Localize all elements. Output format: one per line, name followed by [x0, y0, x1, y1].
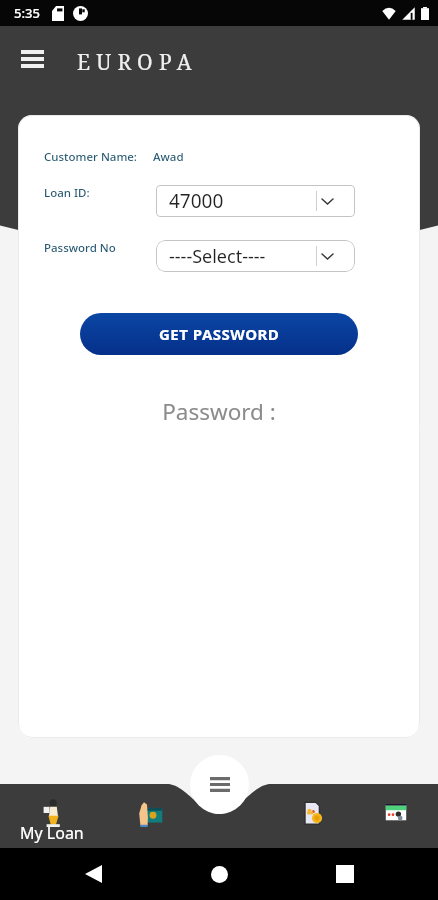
button[interactable]: Menu [190, 755, 249, 814]
button[interactable]: Accounts [353, 784, 438, 847]
staticText: Customer Name: [44, 149, 137, 165]
staticText: 5:35 [14, 4, 40, 22]
staticText: Password : [18, 396, 420, 427]
button[interactable]: My Loan [9, 784, 95, 847]
staticText: 47000 [169, 188, 224, 214]
button[interactable]: Back [73, 854, 113, 894]
button[interactable]: Open navigation menu [11, 38, 53, 80]
button[interactable]: Payments [107, 784, 193, 847]
button[interactable]: Home [199, 854, 239, 894]
button[interactable]: GET PASSWORD [80, 313, 358, 355]
button[interactable]: Recents [325, 854, 365, 894]
button[interactable]: Statements [271, 784, 357, 847]
staticText: Password No [44, 240, 116, 256]
staticText: My Loan [20, 822, 84, 844]
button[interactable]: ----Select---- [156, 240, 355, 272]
button[interactable]: 47000 [156, 185, 355, 217]
staticText: Awad [153, 149, 184, 165]
staticText: ----Select---- [169, 244, 266, 269]
staticText: Loan ID: [44, 185, 90, 201]
staticText: EUROPA [77, 48, 198, 77]
staticText: GET PASSWORD [159, 324, 280, 344]
